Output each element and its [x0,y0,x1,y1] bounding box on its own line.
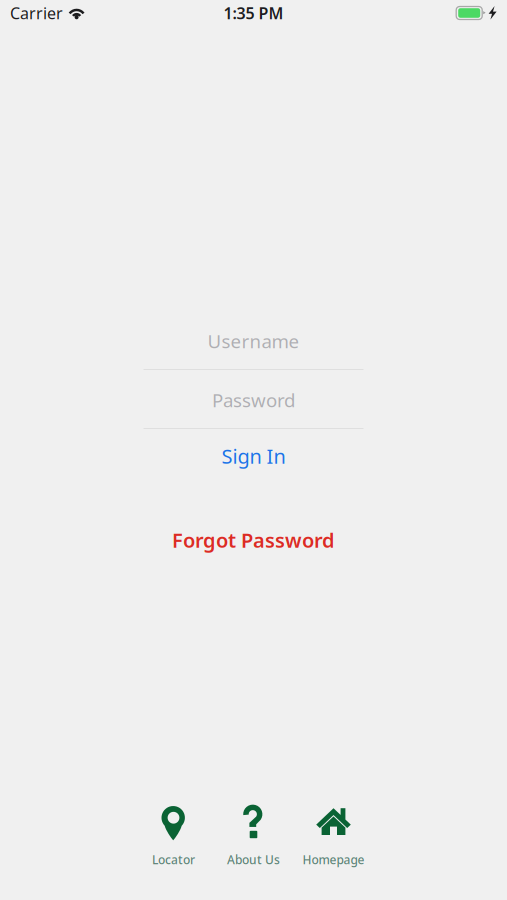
button[interactable]: About Us [213,806,293,868]
button[interactable]: Homepage [293,806,373,868]
staticText: Locator [152,851,195,867]
button[interactable]: Sign In [143,439,363,473]
staticText: 1:35 PM [223,2,283,24]
staticText: Password [212,388,295,412]
staticText: Forgot Password [172,527,335,553]
staticText: Carrier [10,2,63,24]
staticText: About Us [227,851,280,867]
button[interactable]: Locator [133,806,213,868]
staticText: Homepage [302,851,364,867]
button[interactable]: Password [143,388,363,429]
button[interactable]: Username [143,329,363,370]
button[interactable]: Forgot Password [123,525,383,555]
staticText: Username [207,329,299,353]
staticText: Sign In [221,443,285,469]
